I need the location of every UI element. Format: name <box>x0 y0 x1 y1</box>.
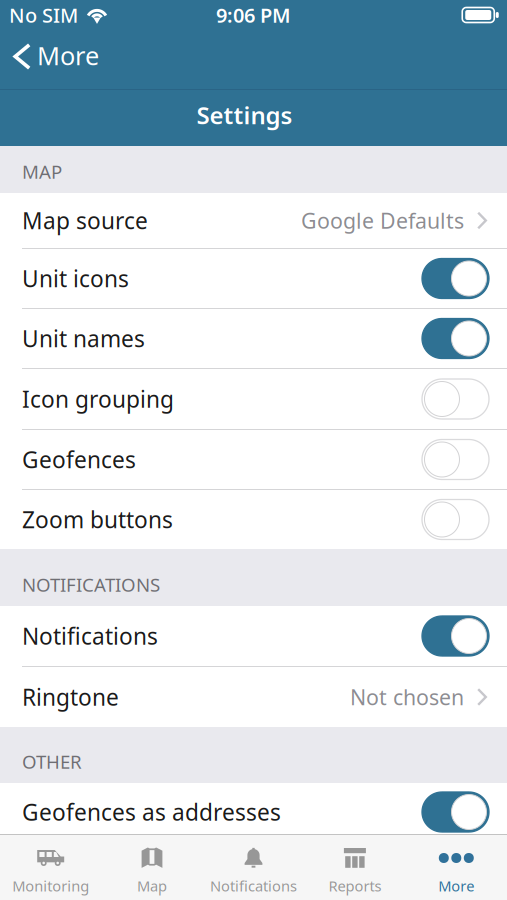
staticText: Monitoring <box>12 876 89 895</box>
button[interactable]: More <box>0 40 111 84</box>
button[interactable]: Map <box>101 835 203 900</box>
button[interactable]: Geofences <box>0 430 507 489</box>
staticText: Map source <box>22 205 148 235</box>
staticText: Ringtone <box>22 682 119 712</box>
staticText: Settings <box>196 99 292 131</box>
staticText: Notifications <box>22 621 158 651</box>
staticText: Unit icons <box>22 263 129 293</box>
staticText: Notifications <box>210 876 297 895</box>
staticText: Google Defaults <box>301 206 464 235</box>
button[interactable]: Monitoring <box>0 835 101 900</box>
staticText: No SIM <box>9 2 78 28</box>
staticText: Unit names <box>22 323 145 353</box>
staticText: Zoom buttons <box>22 504 173 534</box>
staticText: Reports <box>328 876 381 895</box>
button[interactable]: Icon grouping <box>0 369 507 429</box>
staticText: More <box>37 39 99 72</box>
staticText: 9:06 PM <box>216 2 291 28</box>
button[interactable]: Geofences as addresses <box>0 783 507 841</box>
staticText: OTHER <box>22 749 82 774</box>
staticText: Geofences as addresses <box>22 797 281 827</box>
staticText: Geofences <box>22 444 136 474</box>
button[interactable]: Map source <box>0 193 507 248</box>
button[interactable]: Ringtone <box>0 667 507 727</box>
button[interactable]: Zoom buttons <box>0 490 507 549</box>
button[interactable]: Unit icons <box>0 249 507 308</box>
staticText: MAP <box>22 159 62 184</box>
staticText: Not chosen <box>350 683 464 711</box>
button[interactable]: More <box>406 835 507 900</box>
button[interactable]: Reports <box>304 835 406 900</box>
staticText: Map <box>137 876 167 895</box>
staticText: NOTIFICATIONS <box>22 572 160 597</box>
button[interactable]: Unit names <box>0 309 507 368</box>
button[interactable]: Notifications <box>0 606 507 666</box>
staticText: More <box>438 876 474 895</box>
staticText: Icon grouping <box>22 384 174 414</box>
button[interactable]: Notifications <box>203 835 304 900</box>
